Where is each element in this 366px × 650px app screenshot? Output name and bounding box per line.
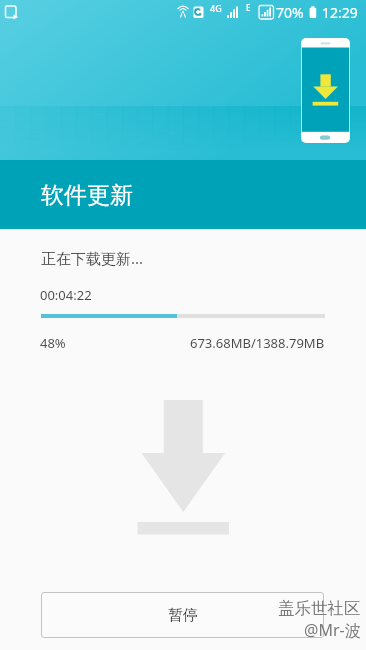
- staticText: 4G: [210, 2, 222, 14]
- staticText: 48%: [40, 334, 66, 352]
- staticText: 12:29: [322, 3, 358, 22]
- staticText: 盖乐世社区: [278, 598, 361, 619]
- staticText: 暂停: [168, 606, 198, 625]
- staticText: @Mr-波: [304, 619, 361, 641]
- staticText: 正在下载更新...: [41, 248, 144, 268]
- staticText: 软件更新: [41, 181, 133, 210]
- staticText: 70%: [276, 3, 304, 22]
- staticText: 00:04:22: [40, 286, 92, 304]
- staticText: E: [246, 2, 251, 13]
- button[interactable]: 暂停: [41, 592, 324, 638]
- staticText: 673.68MB/1388.79MB: [190, 334, 325, 352]
